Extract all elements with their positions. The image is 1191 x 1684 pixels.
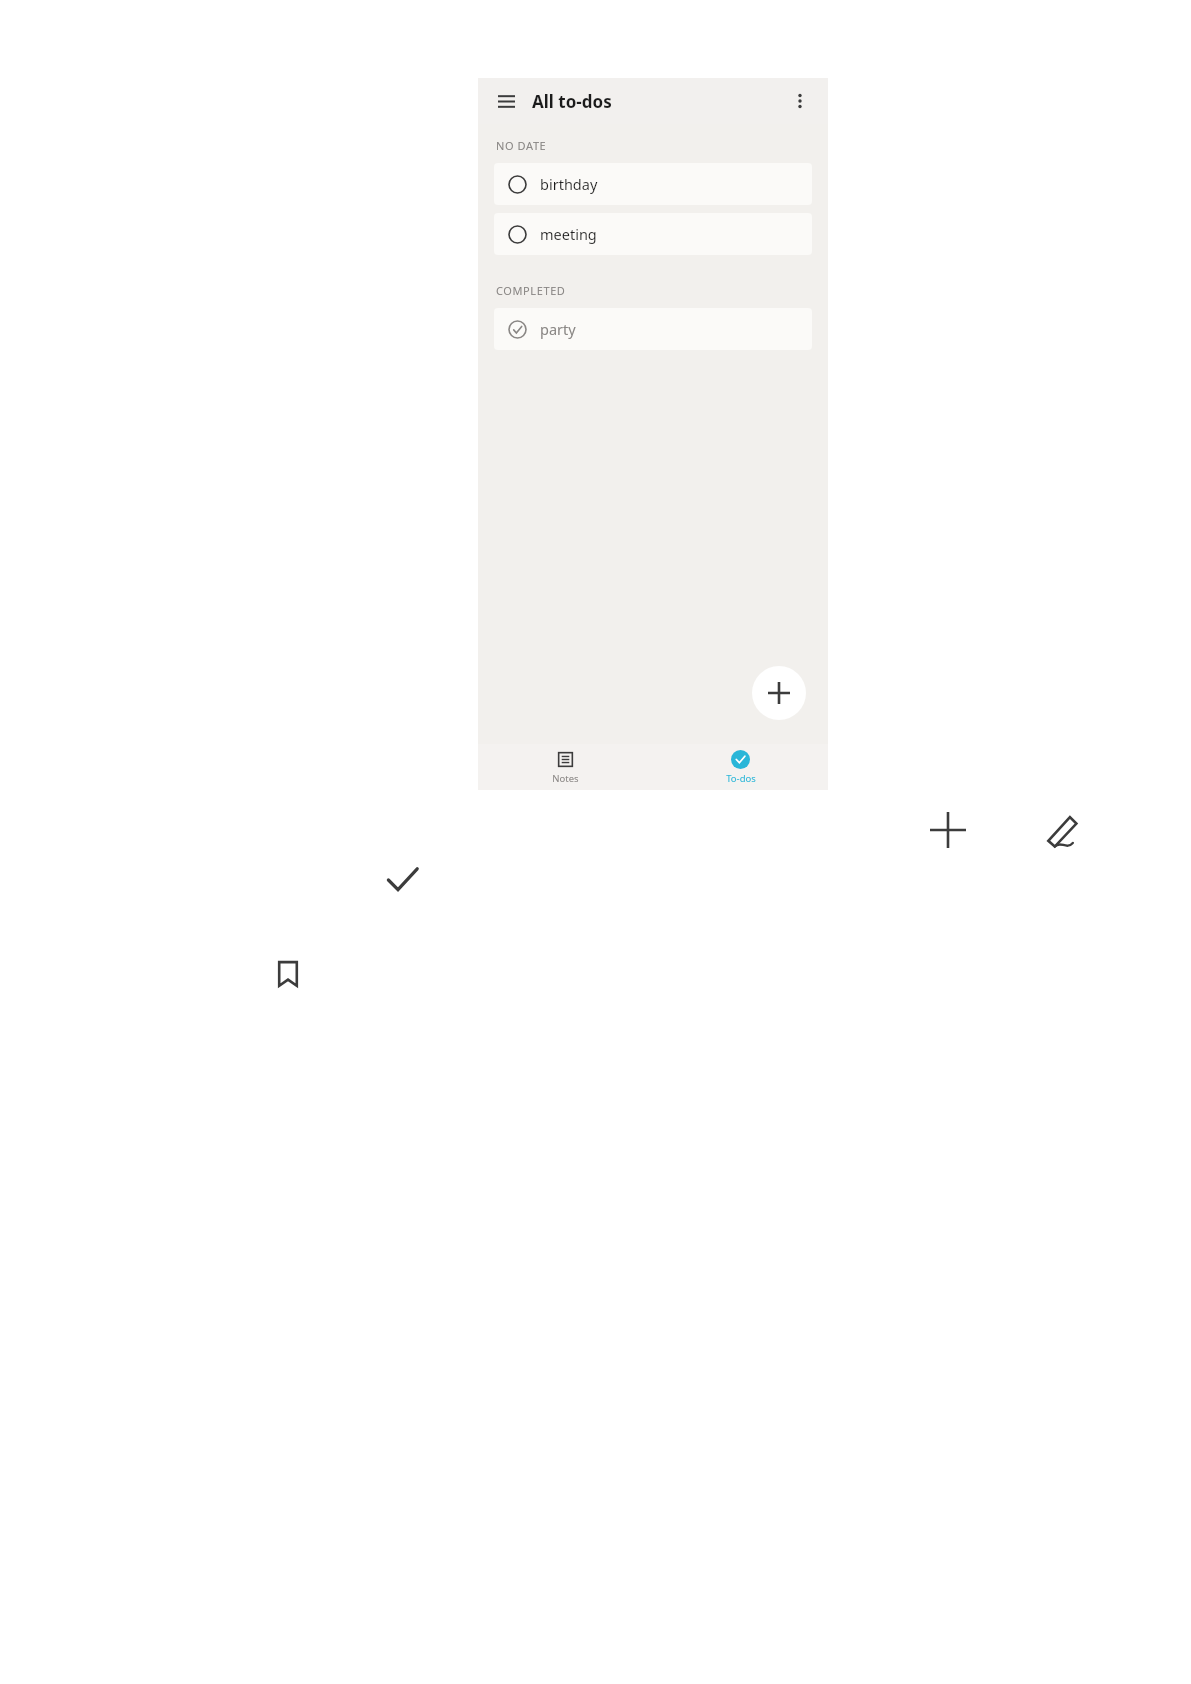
button[interactable]: Menu bbox=[492, 87, 520, 115]
staticText: party bbox=[540, 319, 576, 339]
staticText: NO DATE bbox=[496, 138, 547, 153]
staticText: All to-dos bbox=[532, 90, 612, 113]
staticText: Notes bbox=[552, 772, 579, 785]
button[interactable]: More options bbox=[786, 87, 814, 115]
button[interactable]: Notes bbox=[478, 750, 653, 785]
button[interactable]: Add to-do bbox=[752, 666, 806, 720]
button[interactable]: meeting bbox=[494, 213, 812, 255]
button[interactable]: party bbox=[494, 308, 812, 350]
staticText: To-dos bbox=[726, 772, 756, 785]
button[interactable]: birthday bbox=[494, 163, 812, 205]
staticText: meeting bbox=[540, 224, 597, 244]
button[interactable]: To-dos bbox=[653, 750, 828, 785]
staticText: birthday bbox=[540, 174, 598, 194]
staticText: COMPLETED bbox=[496, 283, 566, 298]
